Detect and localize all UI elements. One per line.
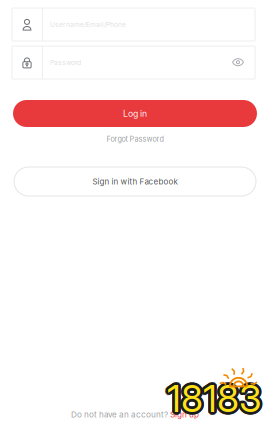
staticText: 18183 [168,377,263,422]
button[interactable]: Show password [221,46,255,79]
staticText: Username/Email/Phone [50,20,126,29]
staticText: 18183 [168,375,263,420]
button[interactable]: Forgot Password [106,132,163,146]
staticText: 18183 [169,375,264,420]
staticText: Sign in with Facebook [92,177,177,186]
staticText: Do not have an account? [71,410,170,419]
staticText: 18183 [167,373,262,418]
staticText: 18183 [165,377,260,422]
staticText: 18183 [169,377,264,422]
staticText: Forgot Password [106,135,163,143]
staticText: 18183 [165,374,260,419]
staticText: 18183 [170,376,265,421]
staticText: 18183 [167,376,262,421]
staticText: 18183 [168,378,263,423]
staticText: 18183 [165,375,260,420]
staticText: 18183 [166,376,261,421]
staticText: 18183 [167,374,262,420]
button[interactable]: Sign in with Facebook [14,167,256,196]
staticText: 18183 [166,378,261,423]
button[interactable]: Do not have an account? [71,409,199,420]
staticText: 18183 [168,373,263,419]
staticText: 18183 [168,376,263,421]
staticText: 18183 [169,374,264,419]
staticText: Password [50,58,81,67]
staticText: 18183 [166,375,261,420]
staticText: Sign up [170,410,199,419]
staticText: Log in [123,108,147,119]
staticText: 18183 [166,373,261,419]
staticText: 18183 [167,377,262,422]
staticText: 18183 [165,378,260,423]
staticText: 18183 [167,378,262,424]
staticText: 18183 [166,377,261,422]
button[interactable]: Log in [13,100,257,127]
staticText: 18183 [169,378,264,423]
staticText: 18183 [164,376,259,421]
